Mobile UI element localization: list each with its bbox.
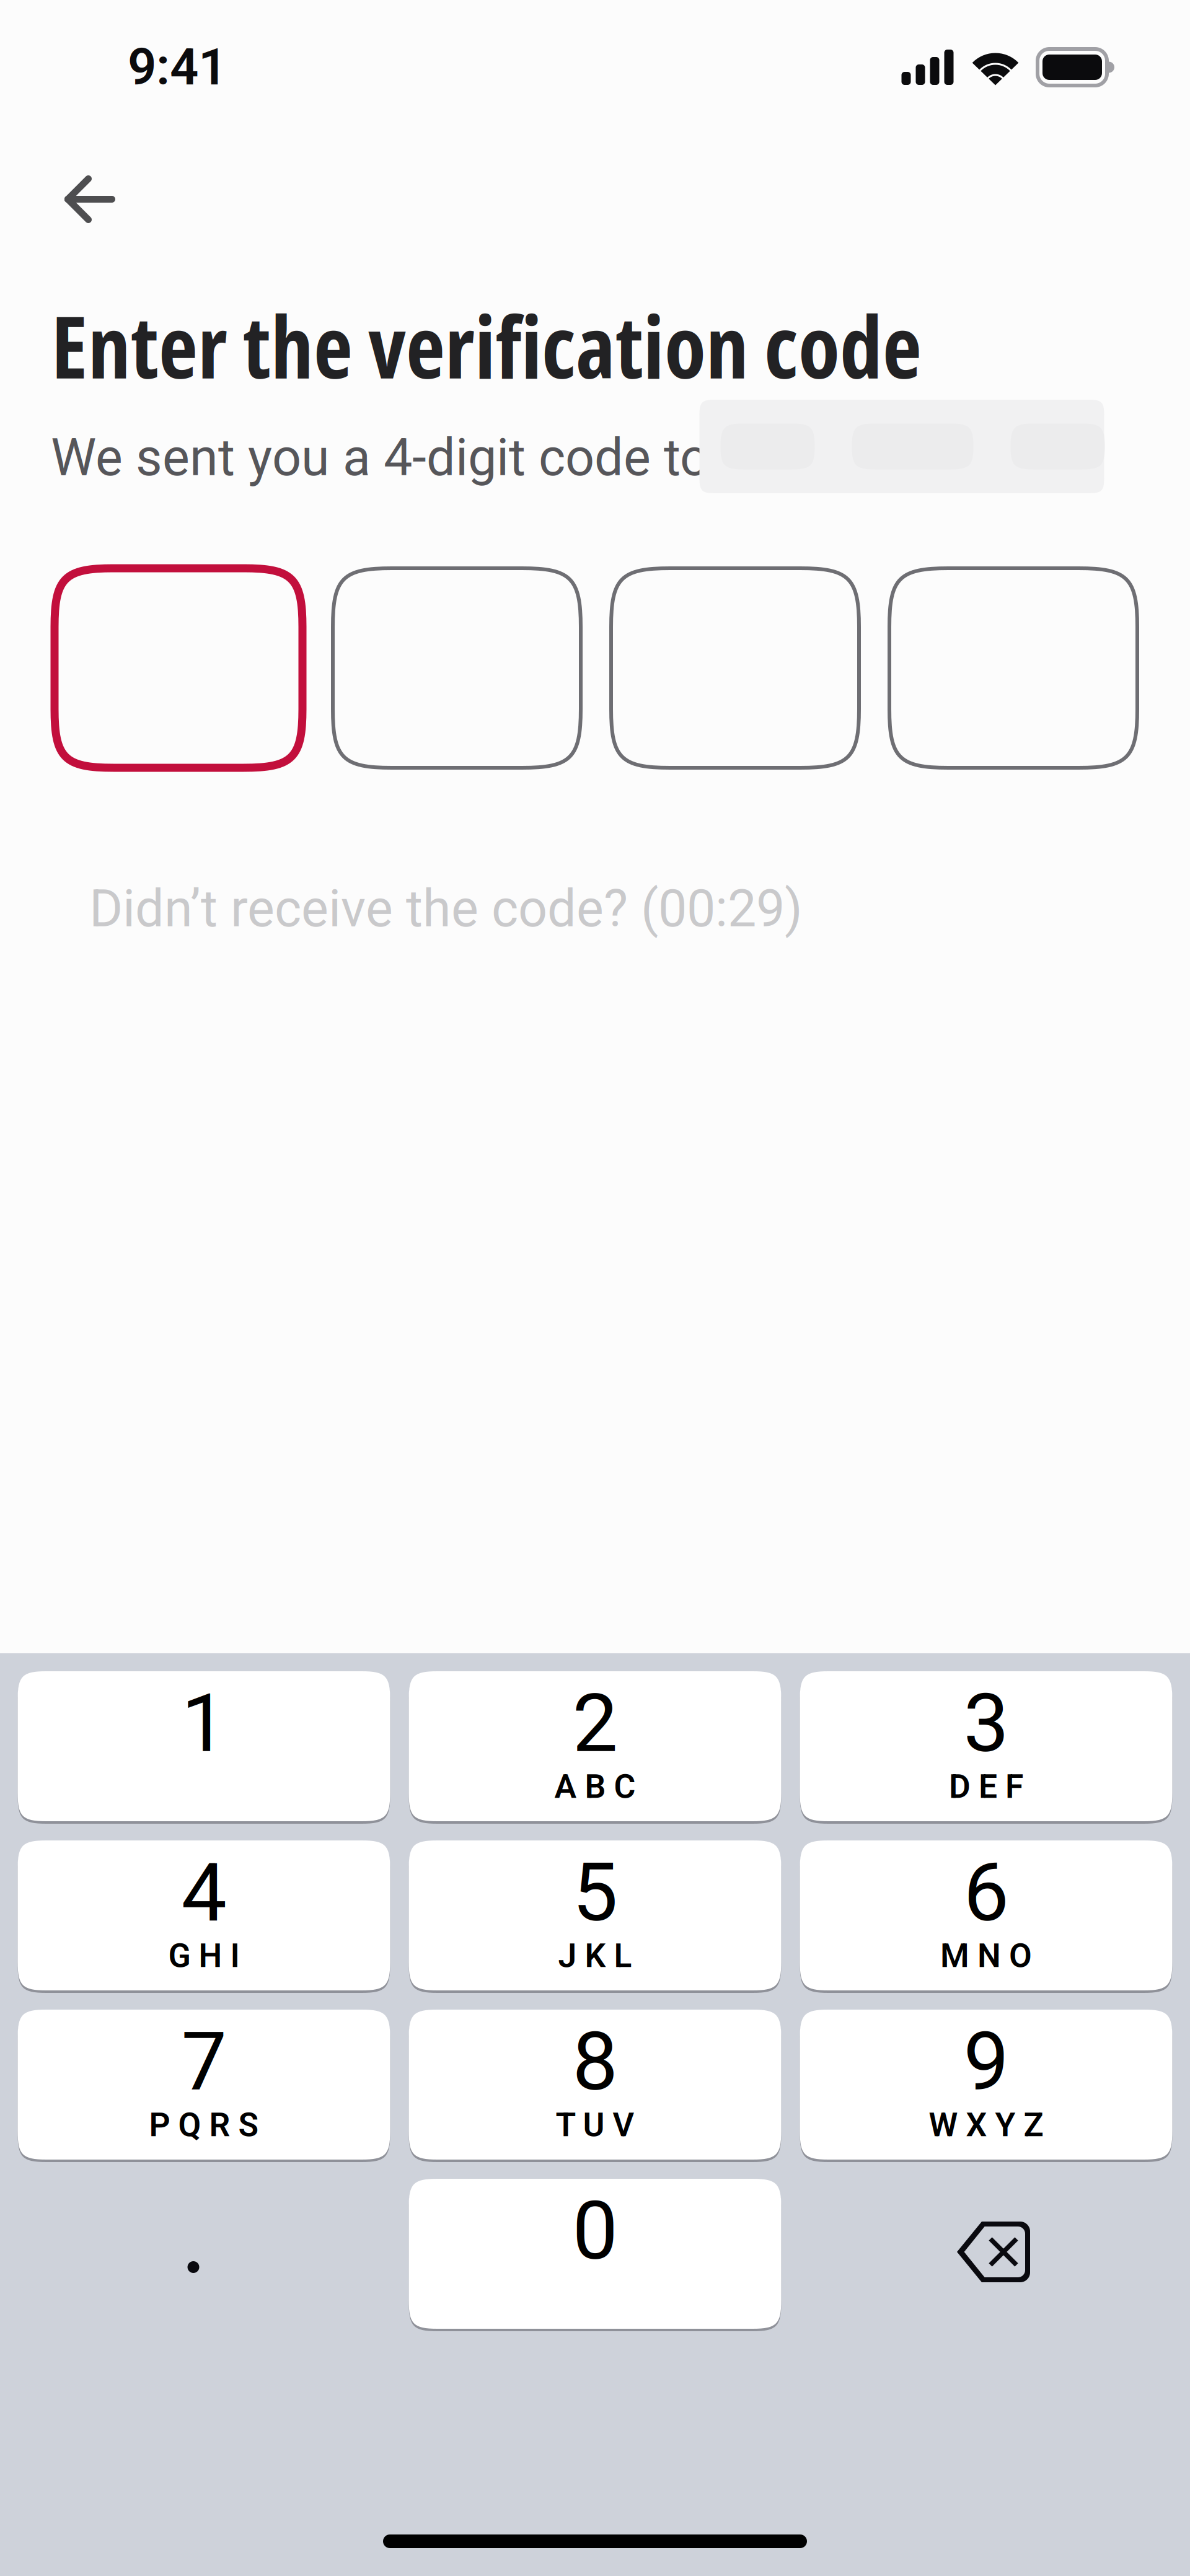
staticText: 0 bbox=[572, 2183, 618, 2278]
button[interactable]: 3 bbox=[800, 1671, 1172, 1821]
staticText: We sent you a 4-digit code to bbox=[51, 428, 709, 488]
staticText: 5 bbox=[572, 1845, 618, 1940]
button[interactable]: 7 bbox=[18, 2010, 390, 2160]
staticText: 9 bbox=[963, 2014, 1009, 2109]
button[interactable]: 1 bbox=[18, 1671, 390, 1821]
staticText: 8 bbox=[572, 2014, 618, 2109]
staticText: T U V bbox=[556, 2106, 634, 2144]
staticText: D E F bbox=[949, 1767, 1023, 1806]
staticText: M N O bbox=[940, 1936, 1032, 1975]
staticText: 2 bbox=[572, 1676, 618, 1771]
button[interactable]: 2 bbox=[409, 1671, 781, 1821]
staticText: 9:41 bbox=[128, 38, 227, 97]
staticText: G H I bbox=[168, 1936, 240, 1975]
staticText: W X Y Z bbox=[929, 2106, 1043, 2144]
button[interactable]: 9 bbox=[800, 2010, 1172, 2160]
button[interactable]: 4 bbox=[18, 1840, 390, 1990]
button[interactable]: 8 bbox=[409, 2010, 781, 2160]
staticText: Didn’t receive the code? (00:29) bbox=[89, 879, 803, 939]
button[interactable]: 5 bbox=[409, 1840, 781, 1990]
button[interactable]: Didn’t receive the code? (00:29) bbox=[77, 864, 815, 954]
staticText: 1 bbox=[181, 1676, 227, 1771]
staticText: 7 bbox=[181, 2014, 227, 2109]
button[interactable]: Decimal point bbox=[18, 2179, 390, 2329]
button[interactable]: 6 bbox=[800, 1840, 1172, 1990]
staticText: J K L bbox=[558, 1936, 632, 1975]
button[interactable]: Back bbox=[37, 151, 143, 248]
button[interactable]: Delete bbox=[800, 2179, 1172, 2329]
staticText: Enter the verification code bbox=[51, 288, 922, 403]
staticText: 3 bbox=[963, 1676, 1009, 1771]
staticText: 4 bbox=[181, 1845, 227, 1940]
button[interactable]: 0 bbox=[409, 2179, 781, 2329]
staticText: A B C bbox=[554, 1767, 636, 1806]
staticText: P Q R S bbox=[149, 2106, 259, 2144]
staticText: 6 bbox=[963, 1845, 1009, 1940]
